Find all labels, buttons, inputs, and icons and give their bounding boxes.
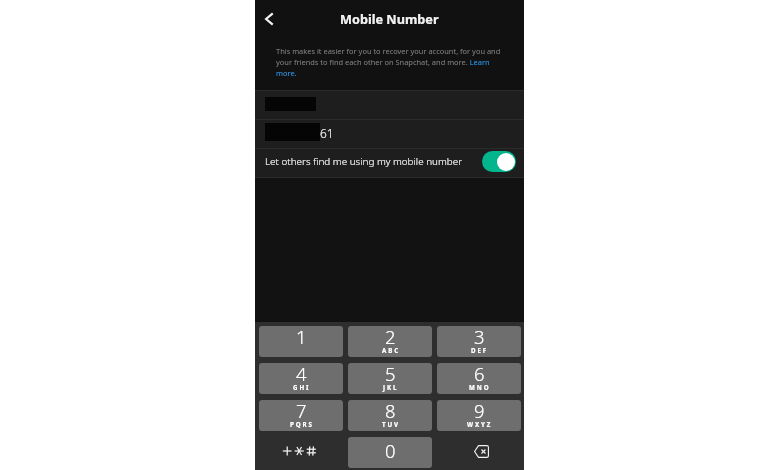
button[interactable]: 6 <box>437 363 521 394</box>
button[interactable]: Let others find me using my mobile numbe… <box>255 149 524 177</box>
staticText: 3 <box>474 326 485 349</box>
staticText: 0 <box>385 438 396 463</box>
button[interactable]: 0 <box>348 437 432 468</box>
staticText: This makes it easier for you to recover … <box>276 46 502 78</box>
staticText: PQRS <box>290 420 314 428</box>
staticText: Let others find me using my mobile numbe… <box>265 154 463 167</box>
staticText: MNO <box>469 383 491 391</box>
button[interactable]: Symbols <box>259 437 343 468</box>
staticText: 9 <box>474 400 485 423</box>
staticText: 2 <box>385 326 396 349</box>
staticText: ABC <box>382 346 401 354</box>
button[interactable]: 4 <box>259 363 343 394</box>
button[interactable]: 5 <box>348 363 432 394</box>
staticText: GHI <box>293 383 311 391</box>
staticText: WXYZ <box>467 420 493 428</box>
button[interactable]: 9 <box>437 400 521 431</box>
button[interactable]: 3 <box>437 326 521 357</box>
staticText: TUV <box>382 420 400 428</box>
staticText: 8 <box>385 400 396 423</box>
staticText: 4 <box>296 363 307 386</box>
button[interactable]: Back <box>255 4 283 34</box>
staticText: 6 <box>474 363 485 386</box>
button[interactable] <box>255 91 524 119</box>
staticText: 7 <box>296 400 307 423</box>
staticText: DEF <box>471 346 489 354</box>
button[interactable]: 1 <box>259 326 343 357</box>
staticText: 1 <box>296 326 307 349</box>
staticText: JKL <box>383 383 399 391</box>
button[interactable]: Backspace <box>437 437 521 468</box>
staticText: 5 <box>385 363 396 386</box>
button[interactable]: 8 <box>348 400 432 431</box>
button[interactable]: 2 <box>348 326 432 357</box>
button[interactable]: 61 <box>255 120 524 148</box>
button[interactable]: 7 <box>259 400 343 431</box>
staticText: 61 <box>320 125 334 141</box>
staticText: Mobile Number <box>340 10 439 27</box>
